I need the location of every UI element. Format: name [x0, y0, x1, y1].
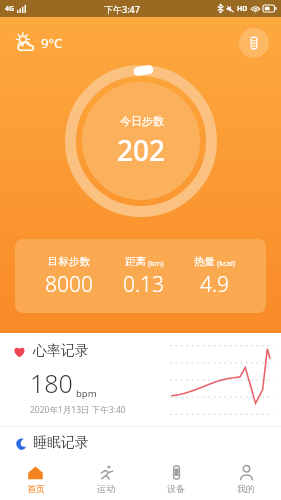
staticText: 180 — [30, 366, 73, 400]
staticText: 下午3:47 — [104, 3, 140, 15]
staticText: 0.13 — [123, 270, 165, 299]
staticText: 4.9 — [200, 270, 230, 299]
button[interactable]: 睡眠记录 — [0, 427, 281, 459]
button[interactable]: 设备 — [141, 459, 211, 494]
staticText: HD — [237, 4, 248, 14]
staticText: (km) — [148, 258, 164, 268]
button[interactable]: 运动 — [71, 459, 141, 494]
staticText: 设备 — [167, 483, 185, 494]
staticText: 热量 — [194, 255, 215, 268]
staticText: bpm — [76, 387, 97, 400]
staticText: 我的 — [237, 483, 255, 494]
staticText: 运动 — [97, 483, 115, 494]
staticText: 今日步数 — [120, 114, 164, 128]
button[interactable]: 我的 — [211, 459, 281, 494]
button[interactable]: Device — [239, 28, 269, 58]
staticText: 首页 — [27, 483, 45, 494]
staticText: 9°C — [41, 34, 63, 52]
staticText: 202 — [117, 131, 166, 169]
button[interactable]: 9°C — [10, 27, 67, 59]
button[interactable]: 心率记录 — [0, 333, 281, 426]
staticText: 2020年1月13日 下午3:40 — [30, 404, 126, 416]
staticText: 目标步数 — [48, 255, 90, 268]
staticText: 4G — [5, 4, 15, 14]
staticText: 睡眠记录 — [33, 434, 89, 452]
staticText: 距离 — [125, 255, 146, 268]
staticText: (kcal) — [217, 258, 236, 268]
staticText: 心率记录 — [33, 342, 89, 360]
button[interactable]: 目标步数 — [15, 239, 266, 313]
staticText: 8000 — [45, 270, 93, 299]
button[interactable]: 首页 — [0, 459, 71, 494]
